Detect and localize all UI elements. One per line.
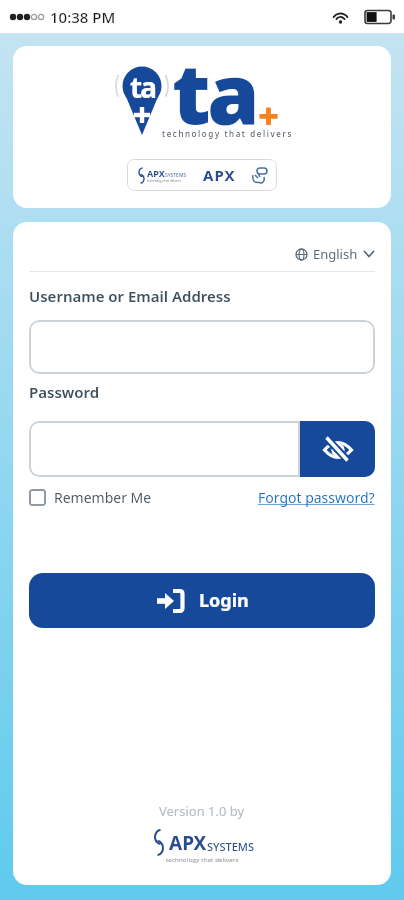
staticText: APX — [147, 167, 165, 179]
button[interactable]: APX — [127, 159, 277, 191]
button[interactable] — [300, 421, 375, 477]
button[interactable]: English — [295, 245, 375, 263]
staticText: English — [313, 245, 358, 263]
staticText: SYSTEMS — [165, 172, 187, 179]
staticText: APX — [203, 165, 236, 185]
staticText: SYSTEMS — [207, 839, 254, 854]
staticText: + — [258, 91, 280, 140]
button[interactable]: Forgot password? — [258, 488, 375, 507]
button[interactable] — [29, 320, 375, 374]
button[interactable]: Remember Me — [29, 488, 152, 507]
staticText: Username or Email Address — [29, 286, 231, 306]
staticText: ta — [130, 68, 155, 106]
button[interactable]: Login — [29, 573, 375, 628]
staticText: ta — [172, 46, 256, 148]
staticText: Remember Me — [54, 488, 152, 507]
staticText: technology that delivers — [162, 128, 293, 139]
staticText: technology that delivers — [147, 179, 181, 183]
staticText: Login — [199, 588, 249, 613]
staticText: APX — [169, 830, 207, 856]
staticText: Password — [29, 382, 100, 402]
staticText: Version 1.0 by — [159, 802, 245, 820]
button[interactable] — [29, 421, 300, 477]
staticText: technology that delivers — [166, 856, 239, 864]
staticText: 10:38 PM — [50, 7, 116, 27]
